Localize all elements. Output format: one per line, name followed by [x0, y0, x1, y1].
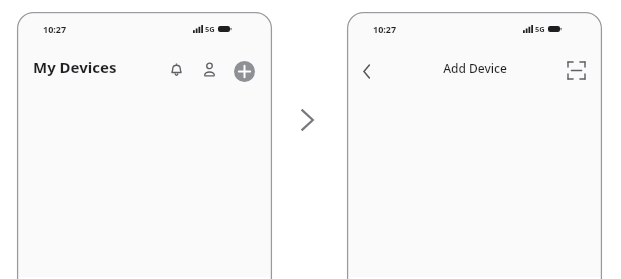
- staticText: 10:27: [43, 23, 67, 35]
- staticText: Add Device: [443, 60, 507, 76]
- button[interactable]: Profile: [196, 56, 222, 82]
- staticText: 5G: [535, 24, 545, 34]
- staticText: 5G: [205, 24, 215, 34]
- button[interactable]: Scan QR code: [562, 56, 590, 84]
- button[interactable]: Back: [354, 58, 380, 84]
- staticText: 10:27: [373, 23, 397, 35]
- button[interactable]: Notifications: [163, 56, 189, 82]
- button[interactable]: Add device: [229, 56, 259, 86]
- staticText: My Devices: [33, 57, 117, 77]
